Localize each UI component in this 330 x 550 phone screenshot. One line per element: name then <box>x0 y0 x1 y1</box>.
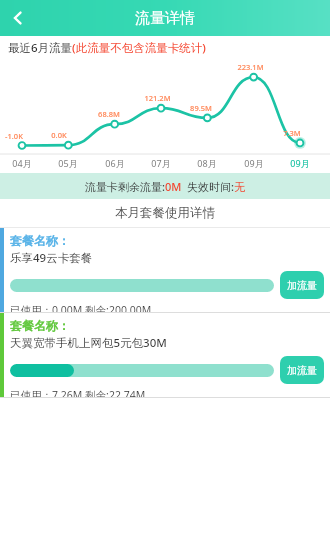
staticText: 121.2M <box>144 93 171 103</box>
staticText: 已使用：7.26M 剩余:22.74M <box>10 388 146 397</box>
button[interactable]: 套餐名称： <box>0 228 330 312</box>
staticText: 04月 <box>8 157 36 169</box>
staticText: 最近6月流量(此流量不包含流量卡统计) <box>8 40 206 56</box>
staticText: 套餐名称： <box>10 318 70 333</box>
staticText: 已使用：0.00M 剩余:200.00M <box>10 303 152 312</box>
button[interactable]: 加流量 <box>280 271 324 299</box>
staticText: 加流量 <box>287 279 317 292</box>
staticText: 223.1M <box>237 62 264 72</box>
staticText: 套餐名称： <box>10 233 70 248</box>
staticText: 7.3M <box>283 128 301 138</box>
staticText: 0.0K <box>51 130 67 140</box>
button[interactable]: Back <box>0 0 36 36</box>
staticText: 乐享49云卡套餐 <box>10 250 93 266</box>
staticText: 08月 <box>193 157 221 169</box>
staticText: 本月套餐使用详情 <box>115 205 215 221</box>
staticText: 09月 <box>286 157 314 169</box>
button[interactable]: 套餐名称： <box>0 313 330 397</box>
staticText: 流量详情 <box>135 9 195 28</box>
staticText: 07月 <box>147 157 175 169</box>
button[interactable]: 加流量 <box>280 356 324 384</box>
staticText: -1.0K <box>5 131 23 141</box>
staticText: 06月 <box>101 157 129 169</box>
staticText: 68.8M <box>98 109 120 119</box>
staticText: 09月 <box>240 157 268 169</box>
staticText: 05月 <box>54 157 82 169</box>
staticText: 89.5M <box>190 103 212 113</box>
staticText: 流量卡剩余流量:0M 失效时间:无 <box>85 179 246 194</box>
staticText: 天翼宽带手机上网包5元包30M <box>10 335 167 351</box>
staticText: 加流量 <box>287 364 317 377</box>
